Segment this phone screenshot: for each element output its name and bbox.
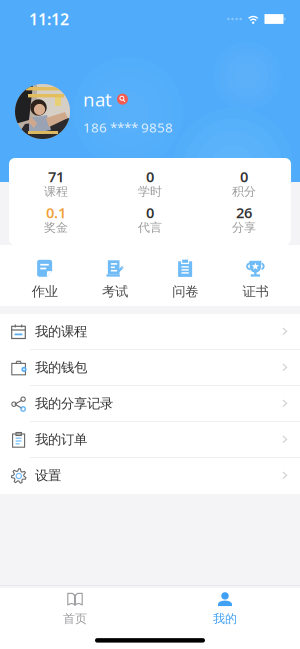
staticText: 0 (146, 167, 154, 186)
staticText: 问卷 (172, 283, 198, 300)
staticText: 我的订单 (35, 431, 87, 448)
staticText: 代言 (138, 220, 162, 235)
button[interactable]: 0 (103, 206, 197, 233)
button[interactable]: 0 (197, 170, 291, 197)
button[interactable]: 0 (103, 170, 197, 197)
button[interactable]: 0.1 (9, 206, 103, 233)
staticText: 积分 (232, 184, 256, 199)
button[interactable]: 设置 (0, 458, 300, 494)
button[interactable]: 我的订单 (0, 422, 300, 458)
staticText: 课程 (44, 184, 68, 199)
staticText: 考试 (102, 283, 128, 300)
button[interactable]: 首页 (0, 592, 150, 626)
button[interactable]: 我的分享记录 (0, 386, 300, 422)
staticText: 我的分享记录 (35, 395, 113, 412)
staticText: 奖金 (44, 220, 68, 235)
staticText: 设置 (35, 467, 61, 484)
staticText: 学时 (138, 184, 162, 199)
button[interactable]: 26 (197, 206, 291, 233)
button[interactable]: 我的课程 (0, 314, 300, 350)
staticText: 0 (146, 203, 154, 222)
button[interactable]: 71 (9, 170, 103, 197)
staticText: nat (83, 87, 112, 112)
staticText: 11:12 (29, 8, 69, 30)
staticText: 首页 (63, 611, 87, 626)
button[interactable]: 我的 (150, 592, 300, 626)
staticText: 我的 (213, 611, 237, 626)
staticText: 作业 (32, 283, 58, 300)
staticText: 186 **** 9858 (83, 118, 173, 136)
button[interactable]: 问卷 (150, 259, 220, 300)
staticText: 0.1 (46, 203, 66, 222)
button[interactable]: 作业 (9, 259, 80, 300)
staticText: 我的课程 (35, 323, 87, 340)
button[interactable]: 我的钱包 (0, 350, 300, 386)
staticText: 我的钱包 (35, 359, 87, 376)
staticText: 71 (48, 167, 64, 186)
button[interactable]: 证书 (220, 259, 290, 300)
staticText: 证书 (242, 283, 268, 300)
staticText: 26 (236, 203, 252, 222)
staticText: 0 (240, 167, 248, 186)
button[interactable]: 考试 (80, 259, 150, 300)
staticText: 分享 (232, 220, 256, 235)
